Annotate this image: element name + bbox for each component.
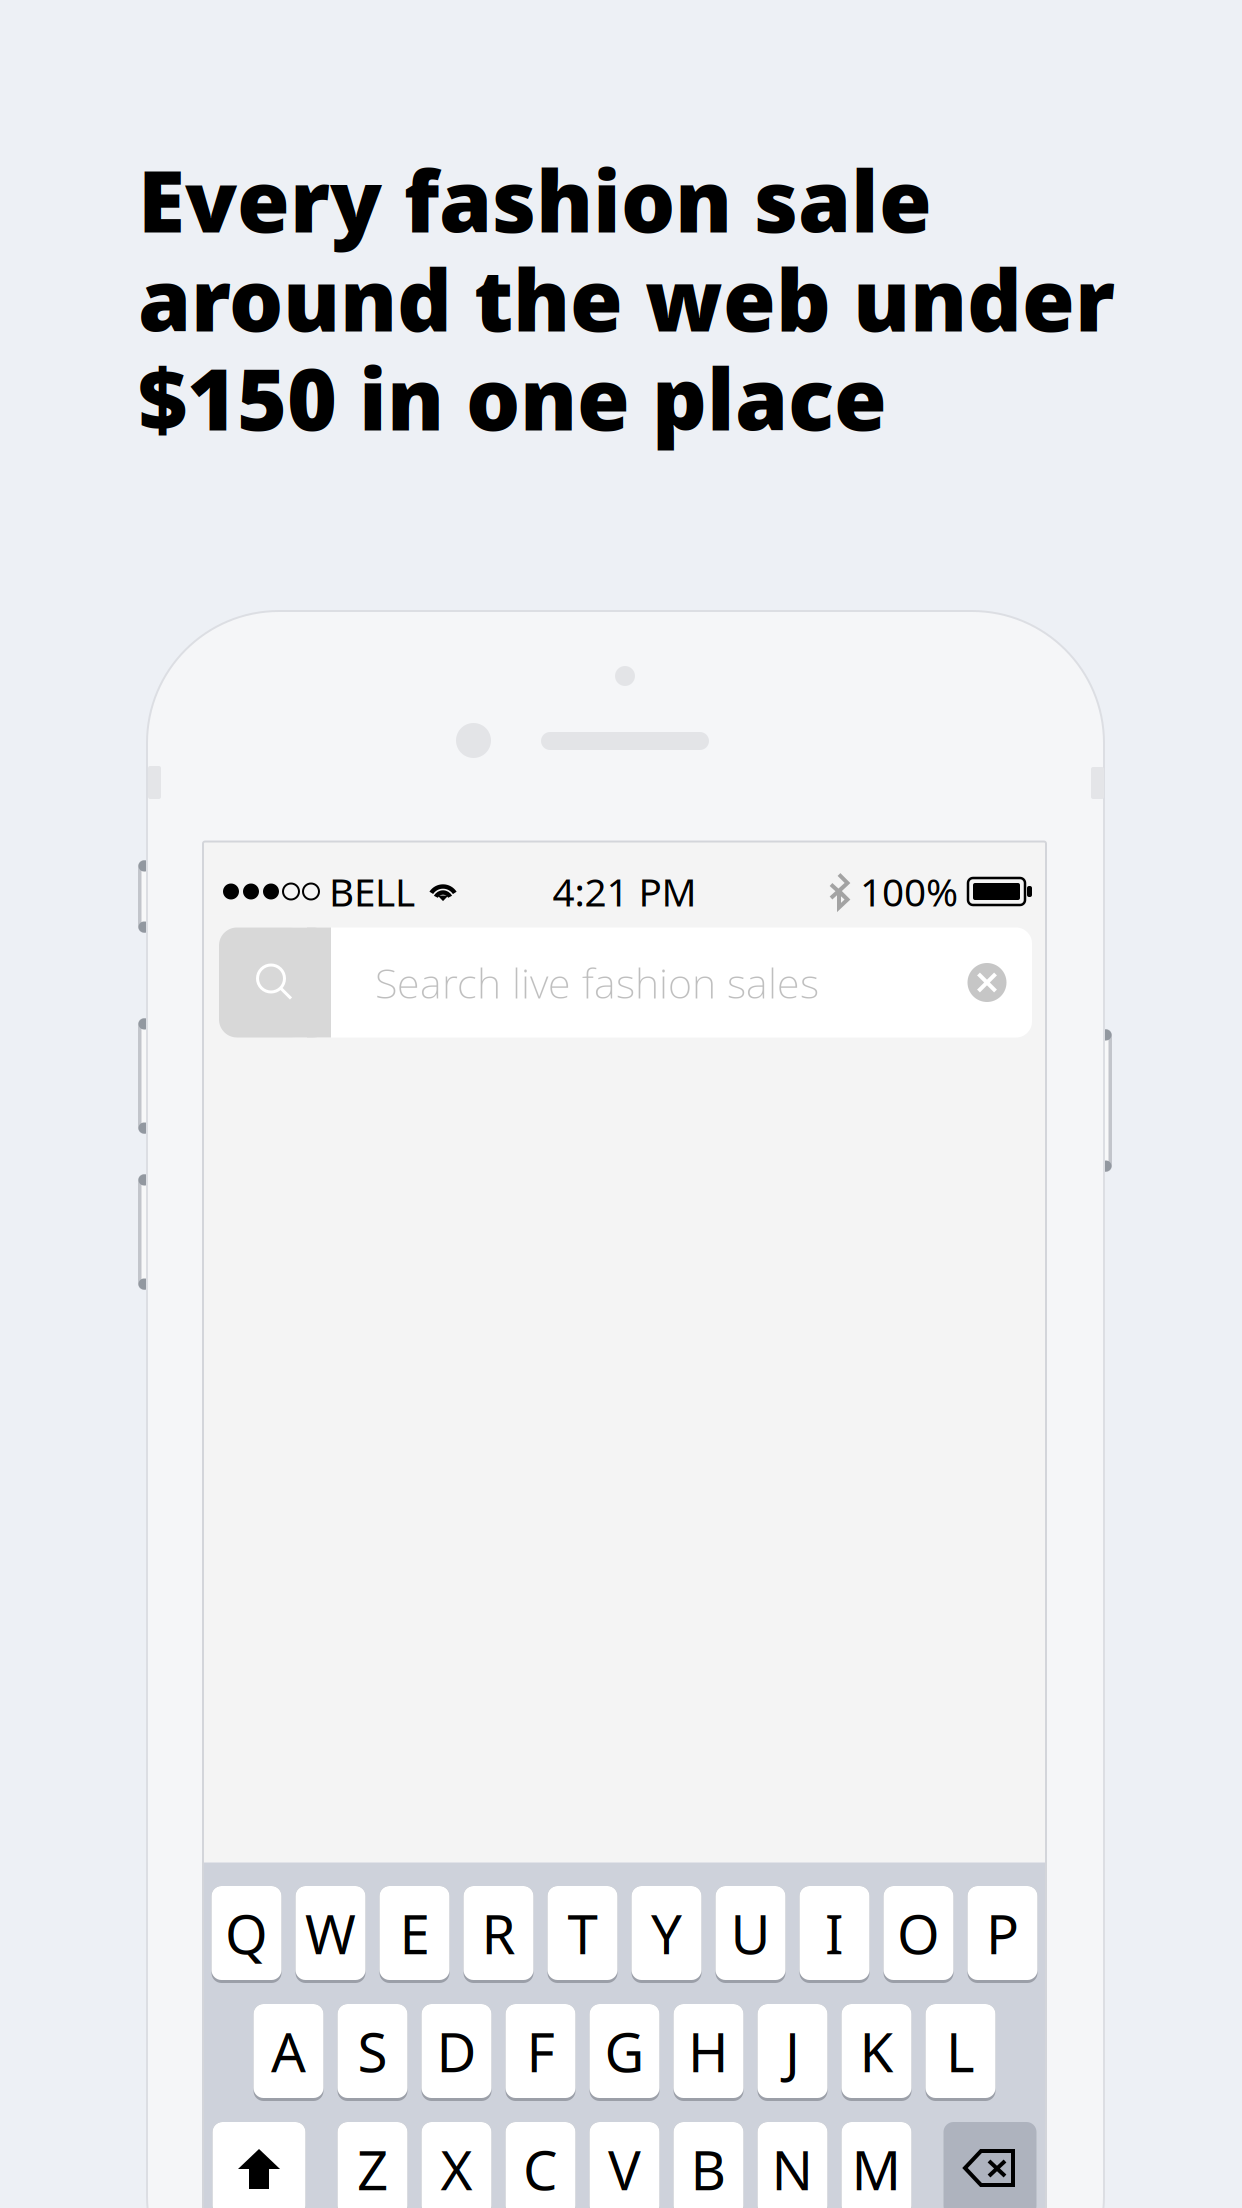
staticText: Q — [225, 1897, 268, 1969]
button[interactable]: T — [547, 1884, 617, 1981]
button[interactable]: D — [421, 2002, 491, 2099]
button[interactable]: Y — [631, 1884, 701, 1981]
staticText: O — [897, 1897, 940, 1969]
button[interactable]: W — [295, 1884, 365, 1981]
staticText: V — [608, 2133, 641, 2205]
staticText: E — [399, 1897, 429, 1969]
button[interactable]: P — [967, 1884, 1037, 1981]
button[interactable]: A — [253, 2002, 323, 2099]
button[interactable]: H — [673, 2002, 743, 2099]
button[interactable]: Z — [337, 2120, 407, 2208]
staticText: D — [436, 2015, 476, 2087]
staticText: F — [526, 2015, 554, 2087]
button[interactable]: E — [379, 1884, 449, 1981]
button[interactable]: G — [589, 2002, 659, 2099]
button[interactable]: Clear text — [954, 949, 1020, 1015]
staticText: X — [440, 2133, 472, 2205]
staticText: around the web under — [138, 242, 1115, 355]
button[interactable]: S — [337, 2002, 407, 2099]
staticText: S — [357, 2015, 387, 2087]
button[interactable]: Search scope — [219, 927, 331, 1037]
staticText: T — [567, 1897, 597, 1969]
button[interactable]: J — [757, 2002, 827, 2099]
button[interactable]: V — [589, 2120, 659, 2208]
staticText: L — [946, 2015, 975, 2087]
staticText: N — [771, 2133, 813, 2205]
staticText: W — [305, 1897, 356, 1969]
button[interactable]: Q — [211, 1884, 281, 1981]
button[interactable]: K — [841, 2002, 911, 2099]
button[interactable]: Shift — [212, 2120, 305, 2208]
staticText: Search live fashion sales — [375, 955, 819, 1010]
button[interactable]: N — [757, 2120, 827, 2208]
staticText: P — [986, 1897, 1019, 1969]
staticText: $150 in one place — [138, 341, 887, 454]
button[interactable]: L — [925, 2002, 995, 2099]
staticText: G — [604, 2015, 644, 2087]
staticText: 4:21 PM — [552, 866, 696, 917]
staticText: I — [825, 1897, 844, 1969]
staticText: Every fashion sale — [138, 143, 932, 256]
staticText: U — [730, 1897, 770, 1969]
staticText: 100% — [860, 866, 958, 917]
button[interactable]: Delete — [943, 2120, 1036, 2208]
button[interactable]: R — [463, 1884, 533, 1981]
staticText: R — [481, 1897, 515, 1969]
button[interactable]: U — [715, 1884, 785, 1981]
button[interactable]: I — [799, 1884, 869, 1981]
button[interactable]: B — [673, 2120, 743, 2208]
button[interactable]: M — [841, 2120, 911, 2208]
staticText: C — [523, 2133, 558, 2205]
button[interactable]: X — [421, 2120, 491, 2208]
staticText: M — [851, 2133, 901, 2205]
staticText: BELL — [329, 866, 415, 917]
button[interactable]: O — [883, 1884, 953, 1981]
staticText: J — [785, 2015, 800, 2087]
staticText: B — [690, 2133, 726, 2205]
staticText: Y — [651, 1897, 682, 1969]
button[interactable]: C — [505, 2120, 575, 2208]
button[interactable]: F — [505, 2002, 575, 2099]
staticText: H — [688, 2015, 729, 2087]
staticText: A — [271, 2015, 306, 2087]
staticText: K — [859, 2015, 893, 2087]
staticText: Z — [357, 2133, 388, 2205]
